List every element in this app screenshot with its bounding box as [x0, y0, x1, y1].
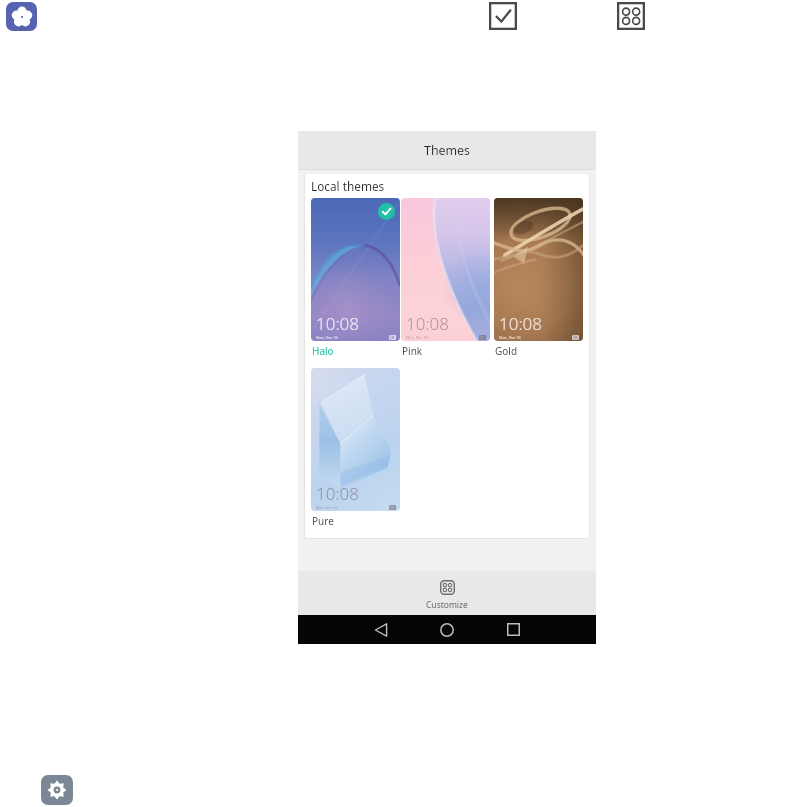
- staticText: 10:08: [499, 312, 542, 335]
- staticText: Mon, Dec 16: [406, 335, 428, 340]
- button[interactable]: 10:08: [494, 198, 583, 358]
- staticText: Pink: [402, 344, 423, 358]
- button[interactable]: 10:08: [311, 368, 400, 528]
- button[interactable]: Select all: [489, 2, 517, 30]
- staticText: Gold: [495, 344, 518, 358]
- button[interactable]: Settings: [41, 775, 73, 805]
- staticText: 10:08: [406, 312, 449, 335]
- button[interactable]: Home: [432, 615, 462, 644]
- staticText: Mon, Dec 16: [499, 335, 521, 340]
- staticText: 10:08: [316, 482, 359, 505]
- button[interactable]: 10:08: [311, 198, 400, 358]
- button[interactable]: Themes app: [6, 2, 37, 31]
- button[interactable]: Back: [366, 615, 396, 644]
- button[interactable]: Customize: [404, 571, 490, 615]
- staticText: Local themes: [311, 178, 385, 194]
- staticText: Halo: [312, 344, 334, 358]
- staticText: Mon, Dec 16: [316, 505, 338, 510]
- button[interactable]: Recent apps: [498, 615, 528, 644]
- staticText: Pure: [312, 514, 334, 528]
- staticText: Mon, Dec 16: [316, 335, 338, 340]
- staticText: 10:08: [316, 312, 359, 335]
- staticText: Themes: [424, 142, 471, 159]
- staticText: Customize: [426, 599, 468, 611]
- button[interactable]: 10:08: [401, 198, 490, 358]
- button[interactable]: Customize grid: [617, 2, 645, 30]
